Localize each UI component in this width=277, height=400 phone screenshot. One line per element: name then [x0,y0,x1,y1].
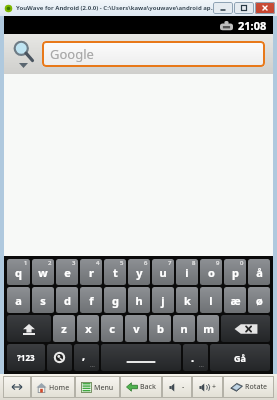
button[interactable]: Period [183,344,208,371]
button[interactable]: v [125,315,147,342]
staticText: w [38,265,48,280]
button[interactable]: z [53,315,75,342]
staticText: d [64,293,71,308]
staticText: a [15,293,22,308]
staticText: 2 [48,259,52,267]
staticText: . [191,350,195,365]
staticText: Back [140,382,156,392]
staticText: x [85,321,92,336]
staticText: s [40,293,46,308]
staticText: ?123 [17,352,35,363]
button[interactable]: j [152,287,174,313]
staticText: 8 [192,259,196,267]
staticText: u [159,265,167,280]
button[interactable]: t [104,259,126,285]
button[interactable]: o [200,259,222,285]
button[interactable]: ø [248,287,270,313]
staticText: m [203,321,214,336]
button[interactable]: f [80,287,102,313]
button[interactable]: w [32,259,54,285]
staticText: Home [49,383,70,393]
button[interactable]: g [104,287,126,313]
staticText: q [15,265,22,280]
staticText: e [64,265,71,280]
staticText: , [82,348,86,363]
staticText: j [161,293,165,308]
button[interactable]: a [7,287,30,313]
staticText: 0 [240,259,244,267]
button[interactable]: Go [210,344,270,371]
staticText: ... [199,361,204,369]
button[interactable]: Input settings [47,344,72,371]
button[interactable]: c [101,315,123,342]
staticText: b [157,321,164,336]
staticText: 3 [72,259,76,267]
staticText: 9 [216,259,220,267]
staticText: h [135,293,143,308]
button[interactable]: Menu [75,376,120,398]
staticText: 6 [144,259,148,267]
button[interactable]: Search options [4,34,42,74]
button[interactable]: b [149,315,171,342]
button[interactable]: k [176,287,198,313]
staticText: 1 [24,259,28,267]
button[interactable]: m [197,315,219,342]
staticText: i [185,265,189,280]
staticText: - [182,382,185,392]
staticText: n [180,321,188,336]
button[interactable]: h [128,287,150,313]
button[interactable]: Home [31,376,75,398]
button[interactable]: q [7,259,30,285]
staticText: Menu [94,383,114,393]
button[interactable]: Shift [7,315,51,342]
button[interactable]: y [128,259,150,285]
button[interactable]: p [224,259,246,285]
button[interactable]: Google [42,41,265,67]
staticText: o [208,265,215,280]
staticText: v [133,321,140,336]
staticText: å [256,265,263,280]
button[interactable]: Backspace [221,315,270,342]
staticText: k [184,293,191,308]
button[interactable]: Window button [255,2,275,14]
staticText: t [113,265,118,280]
staticText: y [136,265,143,280]
button[interactable]: Window button [213,2,233,14]
button[interactable]: Rotate [223,376,274,398]
staticText: YouWave for Android (2.0.0) - C:\Users\k… [16,4,216,12]
button[interactable]: l [200,287,222,313]
staticText: Google [50,45,94,63]
button[interactable]: r [80,259,102,285]
staticText: l [209,293,213,308]
staticText: g [112,293,119,308]
staticText: ø [256,293,263,308]
button[interactable]: e [56,259,78,285]
staticText: f [89,293,94,308]
staticText: + [212,382,217,392]
button[interactable]: Space [101,344,181,371]
staticText: Rotate [245,382,268,392]
staticText: 5 [120,259,124,267]
button[interactable]: d [56,287,78,313]
button[interactable]: Volume down [162,376,192,398]
button[interactable]: x [77,315,99,342]
button[interactable]: æ [224,287,246,313]
staticText: 4 [96,259,100,267]
staticText: p [232,265,239,280]
button[interactable]: å [248,259,270,285]
button[interactable]: s [32,287,54,313]
staticText: æ [230,293,241,308]
button[interactable]: Comma [74,344,99,371]
button[interactable]: Volume up [192,376,223,398]
staticText: r [89,265,94,280]
button[interactable]: i [176,259,198,285]
button[interactable]: Symbols [7,344,45,371]
staticText: c [109,321,115,336]
staticText: ... [90,361,95,369]
staticText: 21:08 [238,18,267,33]
button[interactable]: u [152,259,174,285]
button[interactable]: n [173,315,195,342]
button[interactable]: Resize [3,376,31,398]
button[interactable]: Window button [234,2,254,14]
button[interactable]: Back [120,376,162,398]
